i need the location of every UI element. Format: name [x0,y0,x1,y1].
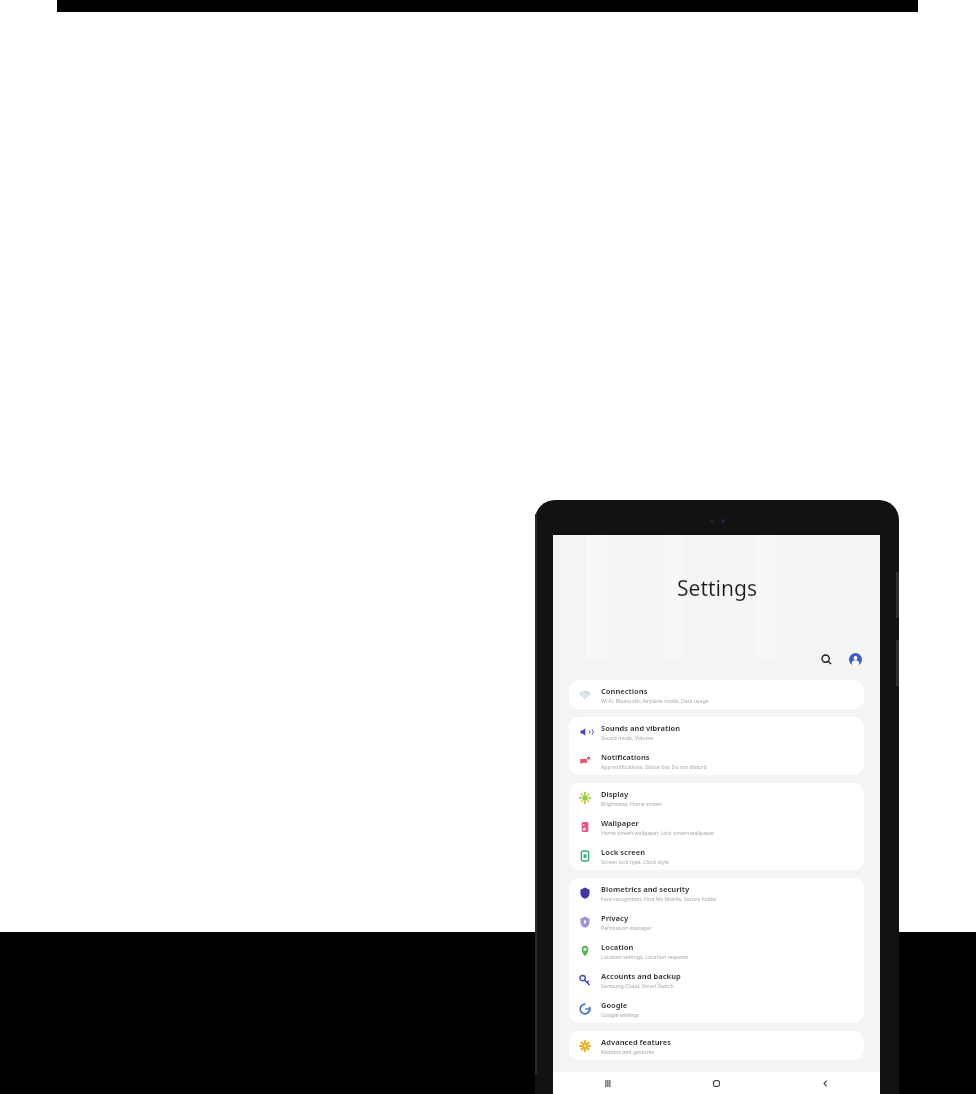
staticText: Wi-Fi, Bluetooth, Airplane mode, Data us… [601,697,709,704]
button[interactable]: Google [569,994,864,1023]
staticText: Motions and gestures [601,1048,655,1055]
staticText: Notifications [601,752,650,762]
staticText: Brightness, Home screen [601,800,663,807]
button[interactable]: Search [814,647,838,671]
button[interactable]: Biometrics and security [569,878,864,907]
staticText: Samsung Cloud, Smart Switch [601,982,674,989]
button[interactable]: Lock screen [569,841,864,870]
staticText: Permission manager [601,924,652,931]
staticText: Settings [677,574,757,603]
staticText: Location [601,942,634,952]
button[interactable]: Notifications [569,746,864,775]
button[interactable]: Back [771,1072,880,1094]
button[interactable]: Sounds and vibration [569,717,864,746]
button[interactable]: Accounts and backup [569,965,864,994]
staticText: Accounts and backup [601,971,681,981]
staticText: Sounds and vibration [601,723,681,733]
button[interactable]: Display [569,783,864,812]
button[interactable]: Advanced features [569,1031,864,1060]
staticText: Home screen wallpaper, Lock screen wallp… [601,829,715,836]
staticText: Privacy [601,913,629,923]
staticText: Google settings [601,1011,640,1018]
staticText: Wallpaper [601,818,639,828]
button[interactable]: Privacy [569,907,864,936]
staticText: Google [601,1000,628,1010]
staticText: Biometrics and security [601,884,690,894]
button[interactable]: Home [662,1072,771,1094]
button[interactable]: Recents [553,1072,662,1094]
staticText: Face recognition, Find My Mobile, Secure… [601,895,718,902]
button[interactable]: Location [569,936,864,965]
staticText: Lock screen [601,847,646,857]
button[interactable]: Connections [569,680,864,709]
staticText: Screen lock type, Clock style [601,858,669,865]
staticText: Connections [601,686,648,696]
button[interactable]: Account [842,646,868,672]
staticText: Advanced features [601,1037,672,1047]
staticText: Sound mode, Volume [601,734,654,741]
staticText: Display [601,789,629,799]
button[interactable]: Wallpaper [569,812,864,841]
staticText: App notifications, Status bar, Do not di… [601,763,707,770]
staticText: Location settings, Location requests [601,953,689,960]
